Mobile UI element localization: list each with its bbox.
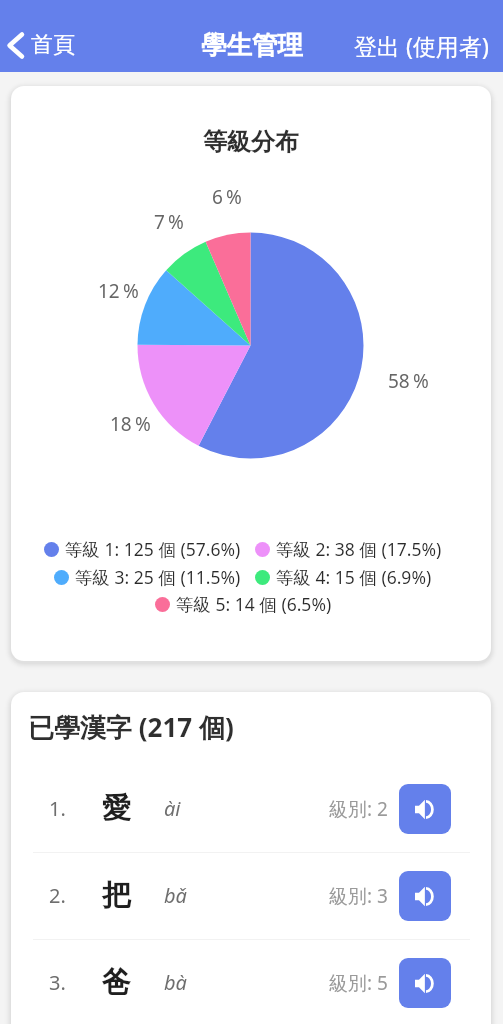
staticText: 愛 bbox=[102, 790, 131, 827]
staticText: bǎ bbox=[164, 882, 187, 909]
button[interactable]: 播放發音 bbox=[399, 784, 451, 834]
staticText: 首頁 bbox=[31, 31, 75, 59]
staticText: 2. bbox=[49, 882, 66, 909]
staticText: 等級 2: 38 個 (17.5%) bbox=[276, 537, 442, 561]
button[interactable]: 等級 3: 25 個 (11.5%) bbox=[54, 565, 241, 589]
staticText: 學生管理 bbox=[201, 29, 303, 61]
staticText: 12 % bbox=[98, 278, 139, 302]
staticText: 級別: 5 bbox=[329, 970, 388, 996]
button[interactable]: 播放發音 bbox=[399, 871, 451, 921]
staticText: 把 bbox=[102, 877, 131, 914]
staticText: 58 % bbox=[388, 368, 429, 392]
staticText: 1. bbox=[49, 795, 66, 822]
button[interactable]: 播放發音 bbox=[399, 958, 451, 1008]
button[interactable]: 首頁 bbox=[0, 25, 83, 65]
staticText: 等級 5: 14 個 (6.5%) bbox=[176, 592, 332, 616]
staticText: 7 % bbox=[154, 209, 184, 233]
staticText: 6 % bbox=[212, 184, 242, 208]
staticText: 等級 3: 25 個 (11.5%) bbox=[75, 565, 241, 589]
staticText: bà bbox=[164, 969, 187, 996]
button[interactable]: 2. bbox=[11, 852, 491, 939]
button[interactable]: 等級 2: 38 個 (17.5%) bbox=[255, 537, 442, 561]
staticText: 爸 bbox=[102, 964, 131, 1001]
staticText: 18 % bbox=[110, 411, 151, 435]
staticText: 登出 (使用者) bbox=[354, 30, 489, 61]
staticText: 3. bbox=[49, 969, 66, 996]
staticText: 等級 1: 125 個 (57.6%) bbox=[65, 537, 241, 561]
button[interactable]: 3. bbox=[11, 939, 491, 1024]
staticText: ài bbox=[164, 795, 181, 822]
button[interactable]: 等級 5: 14 個 (6.5%) bbox=[155, 592, 332, 616]
staticText: 等級 4: 15 個 (6.9%) bbox=[276, 565, 432, 589]
staticText: 等級分布 bbox=[203, 127, 299, 157]
staticText: 已學漢字 (217 個) bbox=[28, 709, 234, 745]
button[interactable]: 等級 4: 15 個 (6.9%) bbox=[255, 565, 432, 589]
button[interactable]: 登出 (使用者) bbox=[342, 24, 503, 67]
button[interactable]: 等級 1: 125 個 (57.6%) bbox=[44, 537, 241, 561]
staticText: 級別: 2 bbox=[329, 796, 388, 822]
button[interactable]: 1. bbox=[11, 765, 491, 852]
staticText: 級別: 3 bbox=[329, 883, 388, 909]
